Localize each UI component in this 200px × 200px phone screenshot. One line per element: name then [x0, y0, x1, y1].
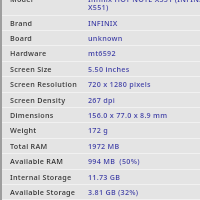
- staticText: Board: [10, 33, 33, 43]
- staticText: Screen Density: [10, 95, 66, 105]
- staticText: Weight: [10, 125, 37, 135]
- staticText: Infinix HOT NOTE X551 (INFINIX: [88, 0, 200, 4]
- staticText: Model: [10, 0, 34, 4]
- staticText: Dimensions: [10, 110, 54, 120]
- staticText: Hardware: [10, 48, 47, 58]
- staticText: 172 g: [88, 125, 108, 135]
- button[interactable]: Internal Storage: [0, 170, 200, 184]
- button[interactable]: Available RAM: [0, 154, 200, 168]
- staticText: 3.81 GB (32%): [88, 187, 139, 197]
- staticText: 720 x 1280 pixels: [88, 79, 151, 89]
- staticText: Total RAM: [10, 141, 48, 151]
- staticText: 994 MB (50%): [88, 156, 140, 166]
- button[interactable]: Weight: [0, 123, 200, 137]
- staticText: Brand: [10, 18, 33, 28]
- staticText: 1972 MB: [88, 141, 120, 151]
- button[interactable]: Brand: [0, 16, 200, 30]
- staticText: Internal Storage: [10, 172, 72, 182]
- button[interactable]: Dimensions: [0, 108, 200, 122]
- staticText: 5.50 inches: [88, 64, 130, 74]
- button[interactable]: Screen Size: [0, 62, 200, 76]
- button[interactable]: Hardware: [0, 46, 200, 60]
- button[interactable]: Board: [0, 31, 200, 45]
- staticText: unknown: [88, 33, 123, 43]
- staticText: Screen Size: [10, 64, 52, 74]
- staticText: Available RAM: [10, 156, 64, 166]
- staticText: Screen Resolution: [10, 79, 78, 89]
- staticText: Available Storage: [10, 187, 76, 197]
- button[interactable]: Available Storage: [0, 185, 200, 199]
- staticText: 11.73 GB: [88, 172, 121, 182]
- staticText: 267 dpi: [88, 95, 115, 105]
- staticText: INFINIX: [88, 18, 118, 28]
- button[interactable]: Screen Density: [0, 93, 200, 107]
- button[interactable]: Total RAM: [0, 139, 200, 153]
- staticText: mt6592: [88, 48, 116, 58]
- staticText: X551): [88, 2, 109, 12]
- button[interactable]: Screen Resolution: [0, 77, 200, 91]
- staticText: 156.0 x 77.0 x 8.9 mm: [88, 110, 168, 120]
